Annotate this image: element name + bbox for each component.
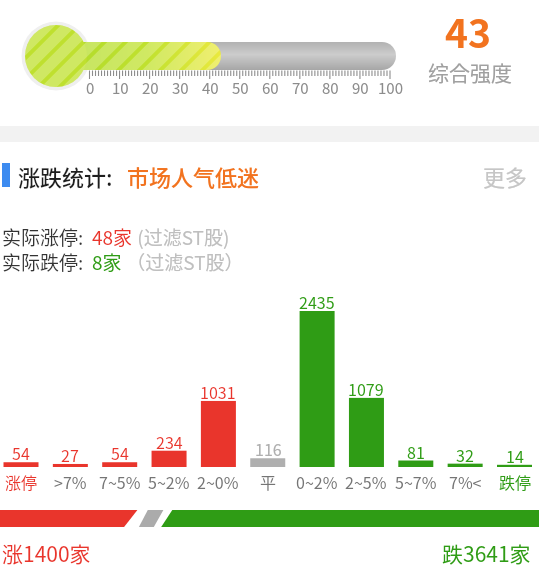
staticText: 0~2% xyxy=(296,470,338,493)
staticText: 1079 xyxy=(348,377,384,400)
staticText: 0 xyxy=(86,77,95,99)
staticText: 81 xyxy=(407,440,425,463)
staticText: 7~5% xyxy=(99,470,141,493)
staticText: 平 xyxy=(260,470,277,493)
staticText: 5~7% xyxy=(395,470,437,493)
staticText: 实际涨停: xyxy=(2,223,92,251)
staticText: 7%< xyxy=(449,470,482,493)
staticText: 100 xyxy=(378,77,403,99)
staticText: 54 xyxy=(111,441,129,464)
button[interactable]: 涨跌统计: xyxy=(18,160,260,192)
staticText: 80 xyxy=(322,77,339,99)
staticText: 2~0% xyxy=(197,470,239,493)
staticText: 实际跌停: xyxy=(2,248,92,276)
staticText: 30 xyxy=(172,77,189,99)
staticText: 48家 xyxy=(92,223,133,251)
staticText: 50 xyxy=(232,77,249,99)
staticText: 2~5% xyxy=(345,470,387,493)
staticText: (过滤ST股) xyxy=(133,223,230,251)
staticText: 54 xyxy=(12,441,30,464)
staticText: 跌3641家 xyxy=(442,538,531,568)
staticText: 8家 xyxy=(92,248,122,276)
button[interactable]: 更多 xyxy=(483,160,528,192)
staticText: 14 xyxy=(506,444,524,467)
staticText: 市场人气低迷 xyxy=(127,160,260,192)
staticText: 20 xyxy=(142,77,159,99)
staticText: 60 xyxy=(262,77,279,99)
staticText: 涨停 xyxy=(5,470,38,493)
staticText: 5~2% xyxy=(148,470,190,493)
staticText: 综合强度 xyxy=(428,57,512,87)
staticText: 70 xyxy=(292,77,309,99)
staticText: >7% xyxy=(54,470,87,493)
staticText: （过滤ST股） xyxy=(122,248,244,276)
staticText: 32 xyxy=(456,443,474,466)
staticText: 90 xyxy=(352,77,369,99)
staticText: 更多 xyxy=(483,160,528,192)
staticText: 116 xyxy=(255,437,282,460)
staticText: 234 xyxy=(156,430,183,453)
staticText: 27 xyxy=(61,443,79,466)
staticText: 涨1400家 xyxy=(2,538,91,568)
staticText: 1031 xyxy=(200,380,236,403)
staticText: 涨跌统计: xyxy=(18,160,113,192)
staticText: 40 xyxy=(202,77,219,99)
staticText: 43 xyxy=(445,3,492,59)
staticText: 跌停 xyxy=(499,470,532,493)
staticText: 10 xyxy=(112,77,129,99)
staticText: 2435 xyxy=(299,290,335,313)
